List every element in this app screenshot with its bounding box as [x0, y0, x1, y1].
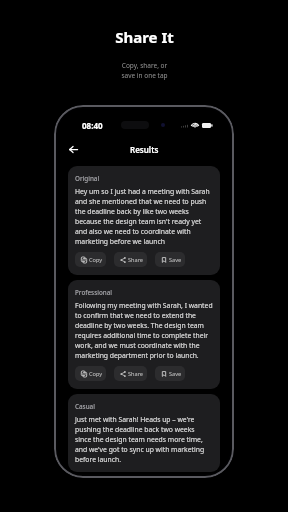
staticText: Original [75, 174, 100, 183]
button[interactable]: Back [66, 142, 80, 156]
staticText: Casual [75, 402, 95, 411]
button[interactable]: Share [114, 366, 147, 381]
staticText: Save [169, 370, 182, 378]
staticText: Share [128, 256, 144, 264]
staticText: Share [128, 370, 144, 378]
staticText: Share It [115, 27, 174, 47]
staticText: Just met with Sarah! Heads up – we're pu… [75, 415, 205, 464]
button[interactable]: Share [114, 252, 147, 267]
staticText: Copy [89, 370, 103, 378]
button[interactable]: Casual [68, 394, 220, 472]
button[interactable]: Original [68, 166, 220, 275]
staticText: Hey um so I just had a meeting with Sara… [75, 187, 210, 246]
staticText: Save [169, 256, 182, 264]
button[interactable]: Save [155, 252, 185, 267]
staticText: Following my meeting with Sarah, I wante… [75, 301, 213, 360]
staticText: 08:40 [82, 120, 103, 131]
staticText: Copy, share, or save in one tap [121, 61, 168, 80]
button[interactable]: Copy [75, 366, 106, 381]
button[interactable]: Save [155, 366, 185, 381]
staticText: Copy [89, 256, 103, 264]
staticText: Professional [75, 288, 113, 297]
button[interactable]: Professional [68, 280, 220, 389]
staticText: Results [130, 144, 159, 155]
button[interactable]: Copy [75, 252, 106, 267]
